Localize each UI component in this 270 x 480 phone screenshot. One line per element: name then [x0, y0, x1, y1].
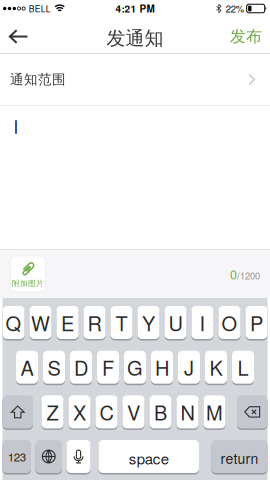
staticText: R: [87, 308, 101, 337]
staticText: 通知范围: [10, 71, 66, 88]
staticText: 0: [230, 265, 237, 283]
staticText: O: [221, 308, 237, 337]
staticText: A: [20, 353, 33, 381]
staticText: T: [115, 308, 127, 337]
staticText: W: [31, 308, 50, 337]
button[interactable]: L: [232, 351, 254, 384]
button[interactable]: P: [245, 306, 267, 339]
button[interactable]: space: [98, 440, 199, 473]
button[interactable]: 通知范围: [0, 54, 270, 105]
button[interactable]: X: [68, 396, 90, 429]
button[interactable]: 附加图片: [0, 256, 45, 292]
staticText: X: [73, 398, 86, 426]
button[interactable]: [35, 440, 62, 473]
button[interactable]: N: [176, 396, 198, 429]
button[interactable]: 123: [2, 440, 31, 473]
button[interactable]: F: [97, 351, 119, 384]
button[interactable]: 发布: [230, 17, 270, 53]
staticText: L: [237, 353, 248, 381]
staticText: M: [206, 398, 223, 426]
button[interactable]: E: [56, 306, 78, 339]
button[interactable]: I: [191, 306, 213, 339]
button[interactable]: Z: [41, 396, 63, 429]
staticText: N: [180, 398, 194, 426]
staticText: J: [184, 353, 194, 381]
staticText: V: [127, 398, 140, 426]
staticText: P: [250, 308, 263, 337]
button[interactable]: K: [205, 351, 227, 384]
button[interactable]: V: [122, 396, 144, 429]
button[interactable]: Y: [137, 306, 159, 339]
button[interactable]: S: [43, 351, 65, 384]
staticText: 4:21 PM: [115, 1, 154, 16]
button[interactable]: M: [203, 396, 225, 429]
staticText: Q: [5, 308, 21, 337]
staticText: Y: [142, 308, 155, 337]
staticText: I: [199, 308, 205, 337]
button[interactable]: C: [95, 396, 117, 429]
staticText: G: [127, 353, 143, 381]
staticText: H: [155, 353, 169, 381]
staticText: F: [102, 353, 114, 381]
staticText: return: [220, 448, 258, 468]
button[interactable]: [0, 18, 28, 52]
staticText: 发通知: [106, 26, 163, 50]
staticText: /1200: [237, 269, 260, 282]
button[interactable]: O: [218, 306, 240, 339]
button[interactable]: D: [70, 351, 92, 384]
button[interactable]: T: [110, 306, 132, 339]
staticText: 附加图片: [12, 279, 44, 288]
button[interactable]: A: [16, 351, 38, 384]
staticText: U: [168, 308, 182, 337]
staticText: E: [61, 308, 74, 337]
button[interactable]: B: [149, 396, 171, 429]
staticText: B: [154, 398, 167, 426]
staticText: 发布: [230, 26, 262, 47]
button[interactable]: R: [83, 306, 105, 339]
staticText: C: [99, 398, 113, 426]
staticText: 22%: [226, 2, 244, 15]
button[interactable]: [2, 396, 33, 429]
staticText: D: [74, 353, 88, 381]
button[interactable]: [66, 440, 90, 473]
button[interactable]: Q: [2, 306, 24, 339]
button[interactable]: return: [211, 440, 267, 473]
staticText: space: [129, 447, 169, 469]
button[interactable]: J: [178, 351, 200, 384]
button[interactable]: G: [124, 351, 146, 384]
button[interactable]: H: [151, 351, 173, 384]
staticText: K: [209, 353, 222, 381]
button[interactable]: [237, 396, 267, 429]
button[interactable]: U: [164, 306, 186, 339]
button[interactable]: W: [29, 306, 51, 339]
staticText: 123: [8, 448, 26, 465]
staticText: Z: [46, 398, 58, 426]
staticText: BELL: [29, 2, 51, 15]
staticText: S: [47, 353, 60, 381]
